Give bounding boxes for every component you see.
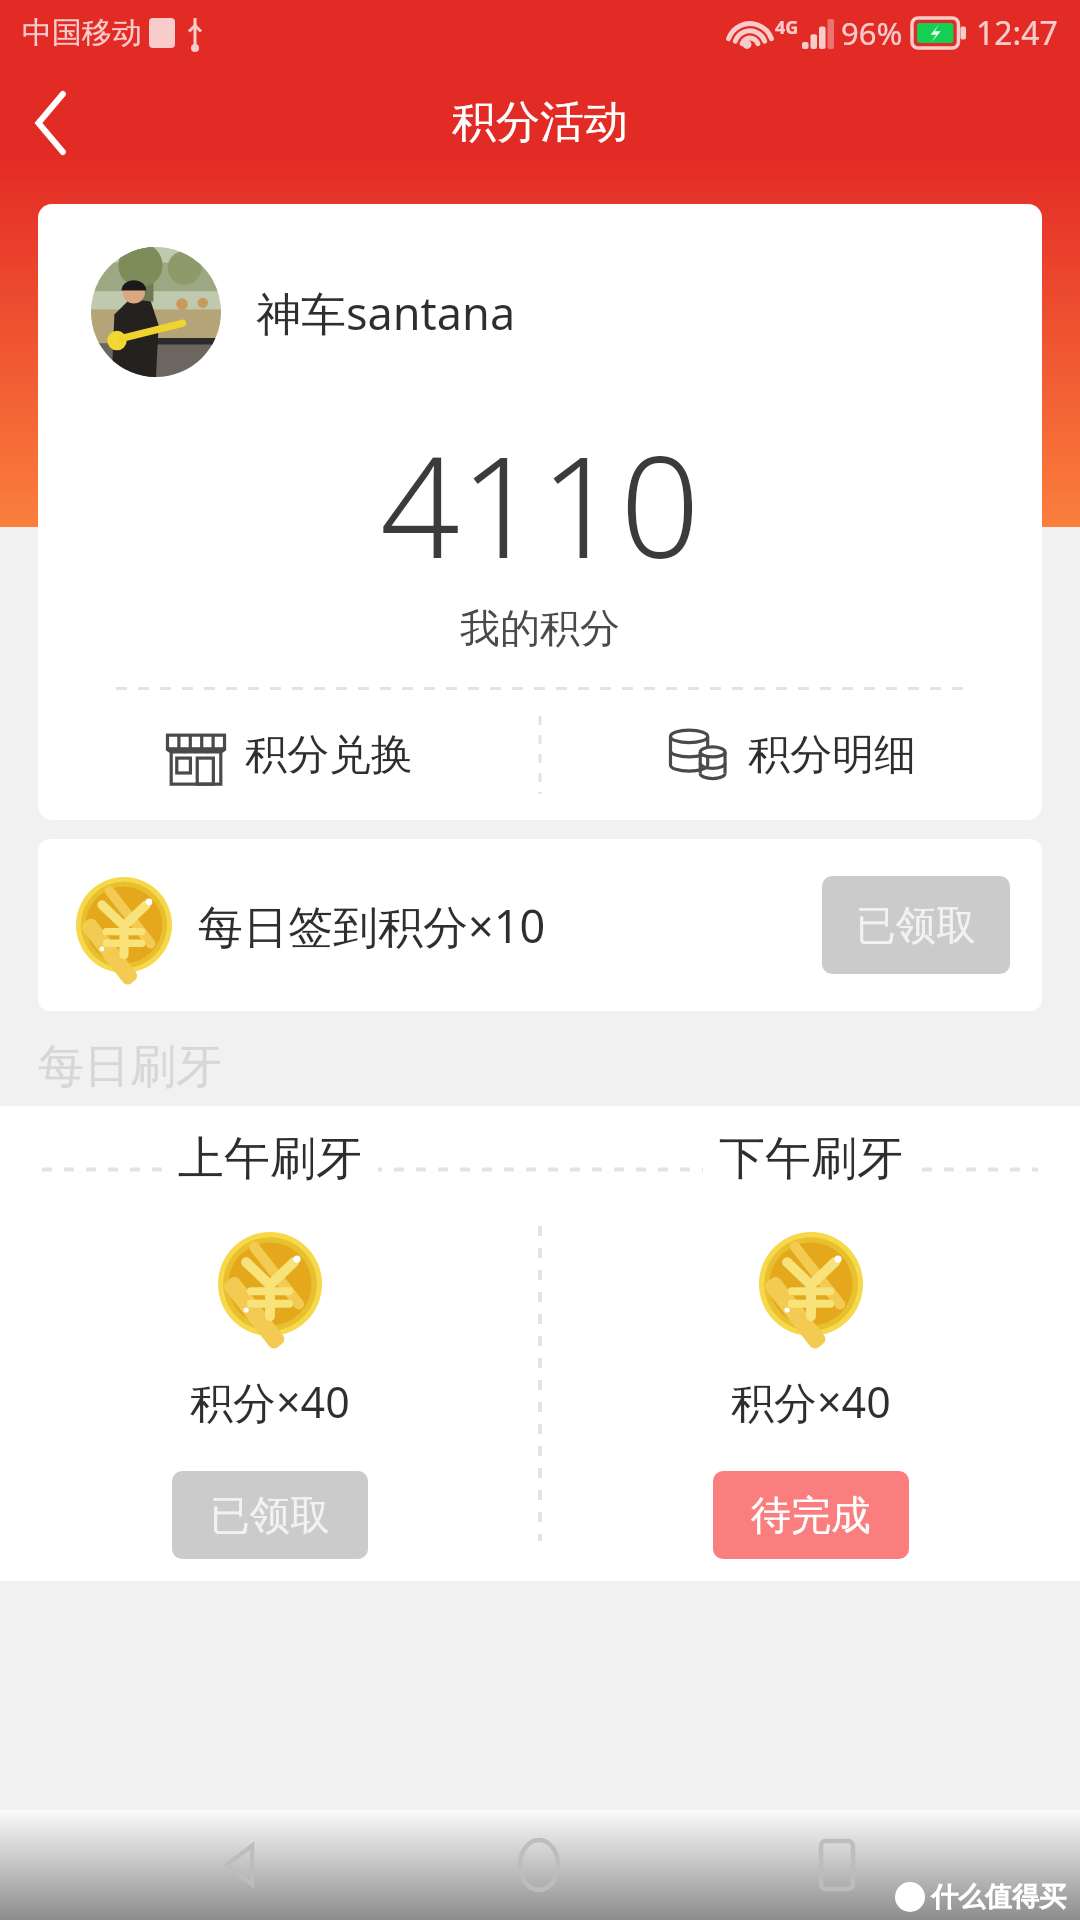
staticText: 积分×40 xyxy=(731,1372,891,1431)
staticText: 每日签到积分×10 xyxy=(198,895,546,956)
staticText: 神车santana xyxy=(256,282,516,343)
button[interactable]: Back xyxy=(187,1810,297,1920)
staticText: 下午刷牙 xyxy=(719,1130,903,1188)
button[interactable]: 积分兑换 xyxy=(38,690,539,820)
staticText: 待完成 xyxy=(751,1490,871,1540)
staticText: 积分明细 xyxy=(748,729,916,782)
button[interactable]: 已领取 xyxy=(172,1471,368,1559)
staticText: 积分×40 xyxy=(190,1372,350,1431)
button[interactable]: 每日签到积分×10 xyxy=(38,839,1042,1011)
button[interactable]: 已领取 xyxy=(822,876,1010,974)
staticText: 积分兑换 xyxy=(245,729,413,782)
staticText: 4G xyxy=(775,15,799,40)
staticText: 已领取 xyxy=(856,900,976,950)
staticText: 上午刷牙 xyxy=(178,1130,362,1188)
staticText: 已领取 xyxy=(210,1490,330,1540)
staticText: 中国移动 xyxy=(22,14,142,52)
staticText: 我的积分 xyxy=(38,603,1042,653)
button[interactable]: Home xyxy=(484,1810,594,1920)
staticText: 什么值得买 xyxy=(931,1880,1066,1914)
staticText: 积分活动 xyxy=(452,95,628,150)
button[interactable]: Recents xyxy=(782,1810,892,1920)
button[interactable]: Back xyxy=(0,71,104,175)
staticText: 4110 xyxy=(38,408,1042,599)
staticText: 96% xyxy=(841,12,903,54)
button[interactable]: 待完成 xyxy=(713,1471,909,1559)
staticText: 12:47 xyxy=(976,11,1058,55)
button[interactable]: 积分明细 xyxy=(541,690,1042,820)
staticText: 每日刷牙 xyxy=(38,1038,222,1096)
